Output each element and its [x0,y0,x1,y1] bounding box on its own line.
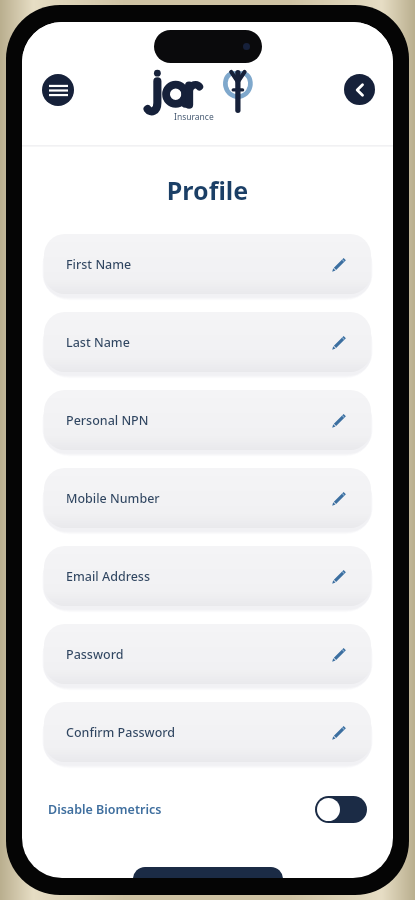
staticText: First Name [66,256,132,273]
button[interactable]: Edit Confirm Password [325,719,351,745]
button[interactable]: First Name [44,234,371,294]
button[interactable]: Back [344,74,375,105]
button[interactable]: Edit Mobile Number [325,485,351,511]
staticText: Confirm Password [66,724,176,741]
button[interactable]: Edit Password [325,641,351,667]
staticText: Profile [22,173,393,207]
button[interactable]: Email Address [44,546,371,606]
staticText: Last Name [66,334,130,351]
button[interactable]: Edit Email Address [325,563,351,589]
button[interactable]: Edit Last Name [325,329,351,355]
button[interactable]: Edit First Name [325,251,351,277]
button[interactable]: Last Name [44,312,371,372]
staticText: Email Address [66,568,151,585]
button[interactable]: Edit Personal NPN [325,407,351,433]
button[interactable]: Disable Biometrics toggle [315,796,367,823]
staticText: Password [66,646,124,663]
button[interactable]: Personal NPN [44,390,371,450]
staticText: Disable Biometrics [48,801,162,818]
button[interactable]: Menu [42,74,74,106]
staticText: Insurance [174,111,214,123]
staticText: Mobile Number [66,490,160,507]
button[interactable]: Confirm Password [44,702,371,762]
button[interactable]: Password [44,624,371,684]
button[interactable] [133,867,283,878]
button[interactable]: Disable Biometrics [48,792,367,826]
staticText: Personal NPN [66,412,149,429]
button[interactable]: Mobile Number [44,468,371,528]
